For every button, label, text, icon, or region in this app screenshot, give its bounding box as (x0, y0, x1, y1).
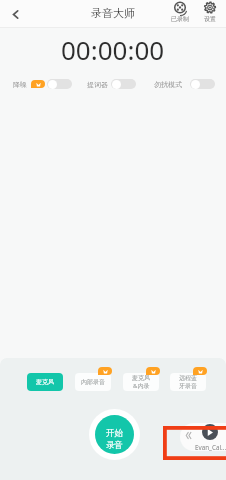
button[interactable]: 内部录音 (75, 373, 111, 391)
button[interactable]: 设置 (198, 0, 221, 23)
button[interactable]: 提词器 (87, 77, 136, 91)
staticText: 录音 (106, 440, 123, 451)
staticText: 内部录音 (81, 378, 105, 386)
button[interactable]: 勿扰模式 (154, 77, 215, 91)
button[interactable]: Evan_Cal... (180, 423, 226, 451)
staticText: 勿扰模式 (154, 80, 182, 89)
button[interactable]: 已录制 (168, 0, 191, 23)
staticText: &内录 (133, 382, 150, 390)
button[interactable]: 降噪 (13, 77, 72, 91)
staticText: 设置 (204, 15, 216, 23)
staticText: 00:00:00 (61, 32, 165, 60)
staticText: 已录制 (171, 15, 189, 23)
staticText: 麦克风 (36, 378, 54, 386)
button[interactable]: 远程蓝 (170, 373, 206, 391)
staticText: 开始 (106, 428, 123, 439)
staticText: 牙录音 (179, 382, 197, 390)
button[interactable]: 麦克风 (123, 373, 159, 391)
button[interactable]: Play (202, 424, 218, 440)
button[interactable]: Back (4, 3, 26, 25)
staticText: Evan_Cal... (195, 443, 226, 451)
staticText: 麦克风 (132, 374, 150, 382)
staticText: 远程蓝 (179, 374, 197, 382)
staticText: 提词器 (87, 80, 108, 89)
staticText: 录音大师 (91, 6, 135, 20)
button[interactable]: 麦克风 (27, 373, 63, 391)
button[interactable]: 开始 (89, 409, 140, 460)
staticText: 降噪 (13, 80, 27, 89)
